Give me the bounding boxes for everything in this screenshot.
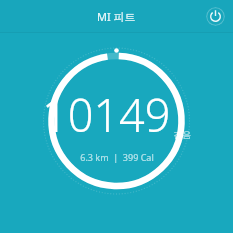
button[interactable]: 10149	[0, 0, 233, 233]
staticText: MI 피트	[97, 9, 136, 24]
staticText: 10149	[42, 84, 171, 145]
staticText: 걸음	[173, 129, 191, 140]
button[interactable]: Sync	[206, 7, 225, 26]
staticText: 6.3 km | 399 Cal	[80, 151, 154, 163]
